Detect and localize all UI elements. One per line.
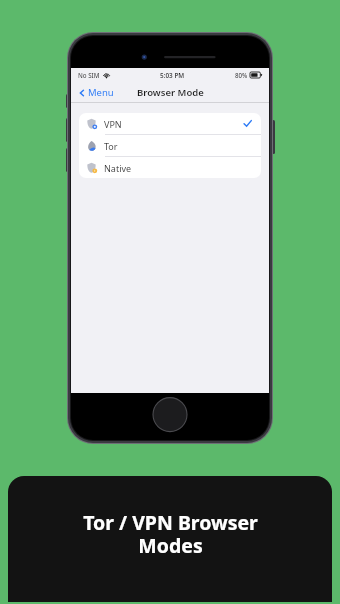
staticText: No SIM bbox=[78, 71, 100, 79]
staticText: Native bbox=[104, 162, 132, 174]
button[interactable]: Menu bbox=[76, 84, 116, 101]
staticText: Browser Mode bbox=[137, 86, 204, 99]
staticText: 80% bbox=[235, 71, 248, 79]
button[interactable]: VPN bbox=[79, 113, 261, 134]
button[interactable]: Tor bbox=[79, 135, 261, 156]
button[interactable]: Native bbox=[79, 157, 261, 178]
staticText: Tor bbox=[104, 140, 118, 152]
staticText: VPN bbox=[104, 118, 122, 130]
staticText: 5:03 PM bbox=[160, 71, 185, 80]
staticText: Tor / VPN Browser Modes bbox=[83, 509, 258, 559]
staticText: Menu bbox=[88, 86, 114, 99]
